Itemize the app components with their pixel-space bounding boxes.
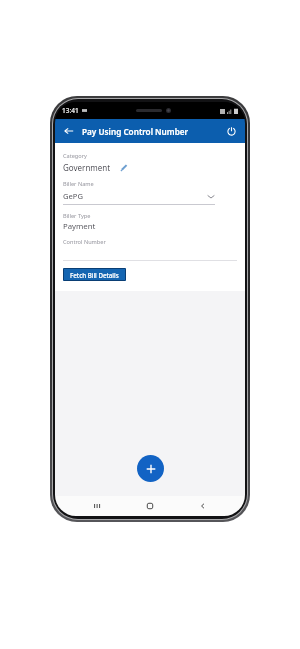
staticText: Control Number xyxy=(63,238,106,246)
staticText: Biller Name xyxy=(63,180,94,188)
staticText: Government xyxy=(63,162,111,173)
staticText: Biller Type xyxy=(63,212,91,220)
button[interactable]: Home xyxy=(139,496,161,516)
button[interactable]: Edit category xyxy=(118,162,129,173)
staticText: Pay Using Control Number xyxy=(82,126,189,137)
button[interactable]: Logout xyxy=(223,123,239,139)
staticText: Payment xyxy=(63,221,96,232)
button[interactable]: Add xyxy=(137,455,164,482)
button[interactable]: GePG xyxy=(63,191,215,201)
staticText: 13:41 xyxy=(62,106,79,115)
staticText: Category xyxy=(63,152,87,160)
staticText: Fetch Bill Details xyxy=(70,271,119,279)
button[interactable]: Back xyxy=(192,496,214,516)
button[interactable]: Back xyxy=(61,123,77,139)
button[interactable]: Fetch Bill Details xyxy=(63,268,126,281)
button[interactable]: Recent apps xyxy=(86,496,108,516)
staticText: GePG xyxy=(63,191,83,201)
